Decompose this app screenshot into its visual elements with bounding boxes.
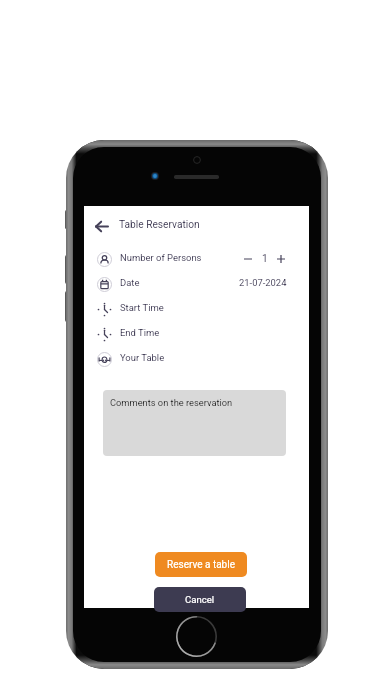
- staticText: 21-07-2024: [239, 277, 287, 288]
- staticText: Table Reservation: [119, 219, 200, 231]
- button[interactable]: [84, 214, 309, 616]
- staticText: Your Table: [120, 352, 165, 363]
- button[interactable]: [84, 248, 309, 650]
- button[interactable]: [84, 323, 309, 669]
- button[interactable]: Decrease: [241, 252, 255, 266]
- staticText: Date: [120, 277, 140, 288]
- button[interactable]: Cancel: [154, 587, 246, 612]
- button[interactable]: [84, 298, 309, 669]
- staticText: Comments on the reservation: [110, 397, 233, 408]
- staticText: End Time: [120, 327, 160, 338]
- staticText: Number of Persons: [120, 252, 202, 263]
- staticText: Start Time: [120, 302, 164, 313]
- staticText: Reserve a table: [167, 559, 235, 571]
- button[interactable]: [84, 273, 309, 669]
- button[interactable]: [84, 348, 309, 669]
- button[interactable]: Back: [92, 216, 112, 236]
- staticText: 1: [262, 253, 268, 265]
- button[interactable]: [103, 390, 286, 456]
- staticText: Cancel: [185, 594, 215, 605]
- button[interactable]: Reserve a table: [155, 552, 247, 577]
- button[interactable]: Increase: [274, 252, 288, 266]
